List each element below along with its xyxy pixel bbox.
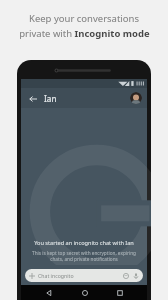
button[interactable]: Recent apps <box>112 285 127 300</box>
button[interactable]: Home <box>77 285 92 300</box>
staticText: Ian <box>44 93 57 104</box>
staticText: This is kept top secret with encryption,… <box>32 250 136 262</box>
staticText: private with Incognito mode <box>19 27 150 40</box>
staticText: Chat incognito <box>38 272 74 279</box>
button[interactable]: Back <box>26 92 39 105</box>
button[interactable]: Chat incognito <box>25 269 143 282</box>
staticText: Keep your conversations <box>29 12 139 25</box>
button[interactable]: Back <box>41 285 56 300</box>
button[interactable]: Profile photo <box>130 92 142 104</box>
staticText: You started an incognito chat with Ian <box>34 239 134 247</box>
